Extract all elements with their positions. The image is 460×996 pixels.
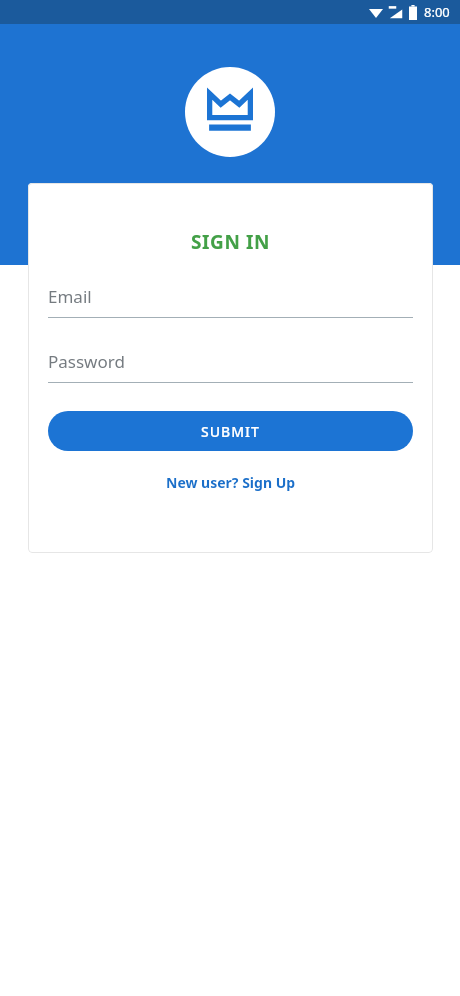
button[interactable]: Email — [28, 285, 433, 318]
staticText: 8:00 — [424, 3, 450, 21]
staticText: Password — [48, 350, 125, 373]
button[interactable]: SUBMIT — [48, 411, 413, 451]
button[interactable]: New user? Sign Up — [154, 467, 308, 498]
button[interactable]: Password — [28, 350, 433, 383]
staticText: SIGN IN — [28, 229, 433, 255]
staticText: New user? Sign Up — [166, 473, 296, 492]
staticText: SUBMIT — [201, 422, 260, 441]
staticText: Email — [48, 285, 92, 308]
